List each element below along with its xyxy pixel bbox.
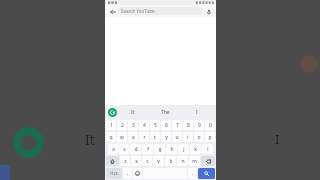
button[interactable]: w — [117, 132, 127, 142]
button[interactable]: s — [119, 144, 129, 154]
button[interactable]: 6 — [161, 120, 171, 130]
button[interactable]: t — [150, 132, 160, 142]
staticText: r — [143, 134, 146, 141]
button[interactable]: m — [189, 156, 200, 166]
staticText: It — [131, 109, 135, 116]
staticText: t — [154, 134, 156, 141]
button[interactable]: j — [178, 144, 189, 154]
button[interactable]: l — [202, 144, 213, 154]
staticText: 4 — [143, 122, 146, 129]
button[interactable]: ?123 — [106, 168, 122, 179]
staticText: 0 — [209, 122, 212, 129]
button[interactable]: The — [149, 105, 181, 119]
button[interactable]: 3 — [128, 120, 138, 130]
button[interactable]: a — [108, 144, 118, 154]
button[interactable]: x — [131, 156, 141, 166]
button[interactable]: Back — [107, 6, 118, 17]
button[interactable]: 8 — [183, 120, 193, 130]
staticText: 2 — [121, 122, 124, 129]
staticText: f — [147, 146, 149, 153]
staticText: b — [169, 158, 173, 165]
staticText: ?123 — [110, 171, 118, 176]
button[interactable]: r — [139, 132, 149, 142]
staticText: m — [192, 158, 197, 165]
staticText: w — [120, 134, 124, 141]
staticText: i — [187, 134, 189, 141]
staticText: I — [275, 130, 280, 148]
button[interactable]: Backspace — [201, 156, 215, 166]
button[interactable]: e — [128, 132, 138, 142]
button[interactable]: u — [172, 132, 182, 142]
button[interactable]: Emoji — [133, 168, 142, 179]
button[interactable]: y — [161, 132, 171, 142]
button[interactable]: h — [166, 144, 177, 154]
button[interactable]: i — [183, 132, 193, 142]
button[interactable]: . — [188, 168, 197, 179]
staticText: d — [134, 146, 138, 153]
button[interactable]: 2 — [117, 120, 127, 130]
button[interactable]: Search — [198, 168, 215, 179]
button[interactable]: 0 — [205, 120, 215, 130]
button[interactable]: I — [181, 105, 213, 119]
button[interactable]: 7 — [172, 120, 182, 130]
button[interactable]: d — [130, 144, 141, 154]
button[interactable]: f — [142, 144, 153, 154]
button[interactable]: c — [142, 156, 152, 166]
staticText: . — [192, 170, 194, 177]
staticText: h — [170, 146, 174, 153]
button[interactable]: o — [194, 132, 204, 142]
button[interactable]: It — [117, 105, 149, 119]
staticText: k — [194, 146, 197, 153]
button[interactable]: z — [120, 156, 130, 166]
staticText: 7 — [176, 122, 179, 129]
staticText: v — [157, 158, 160, 165]
button[interactable]: Voice search — [203, 6, 214, 17]
button[interactable]: 5 — [150, 120, 160, 130]
button[interactable]: 1 — [106, 120, 116, 130]
button[interactable]: Grammarly — [108, 108, 117, 117]
staticText: z — [124, 158, 127, 165]
button[interactable]: g — [154, 144, 165, 154]
staticText: q — [109, 134, 113, 141]
staticText: g — [158, 146, 162, 153]
staticText: u — [175, 134, 179, 141]
staticText: s — [123, 146, 126, 153]
staticText: x — [135, 158, 138, 165]
staticText: , — [127, 170, 129, 177]
button[interactable]: Shift — [106, 156, 119, 166]
staticText: 1 — [110, 122, 113, 129]
staticText: The — [161, 109, 170, 116]
staticText: I — [196, 109, 198, 116]
button[interactable]: k — [190, 144, 201, 154]
button[interactable]: p — [205, 132, 215, 142]
staticText: y — [165, 134, 168, 141]
staticText: l — [207, 146, 209, 153]
staticText: 8 — [187, 122, 190, 129]
staticText: 6 — [165, 122, 168, 129]
staticText: Search YouTube — [121, 8, 155, 14]
staticText: e — [132, 134, 135, 141]
staticText: c — [146, 158, 149, 165]
staticText: p — [208, 134, 212, 141]
staticText: a — [112, 146, 115, 153]
button[interactable]: b — [165, 156, 176, 166]
button[interactable]: q — [106, 132, 116, 142]
button[interactable]: 9 — [194, 120, 204, 130]
button[interactable]: n — [177, 156, 188, 166]
button[interactable]: v — [153, 156, 164, 166]
staticText: 9 — [198, 122, 201, 129]
staticText: n — [181, 158, 185, 165]
staticText: 3 — [132, 122, 135, 129]
staticText: o — [197, 134, 201, 141]
staticText: It — [85, 130, 95, 149]
staticText: 5 — [154, 122, 157, 129]
button[interactable]: 4 — [139, 120, 149, 130]
staticText: j — [183, 146, 185, 153]
button[interactable]: , — [123, 168, 132, 179]
button[interactable]: Search YouTube — [118, 7, 203, 15]
